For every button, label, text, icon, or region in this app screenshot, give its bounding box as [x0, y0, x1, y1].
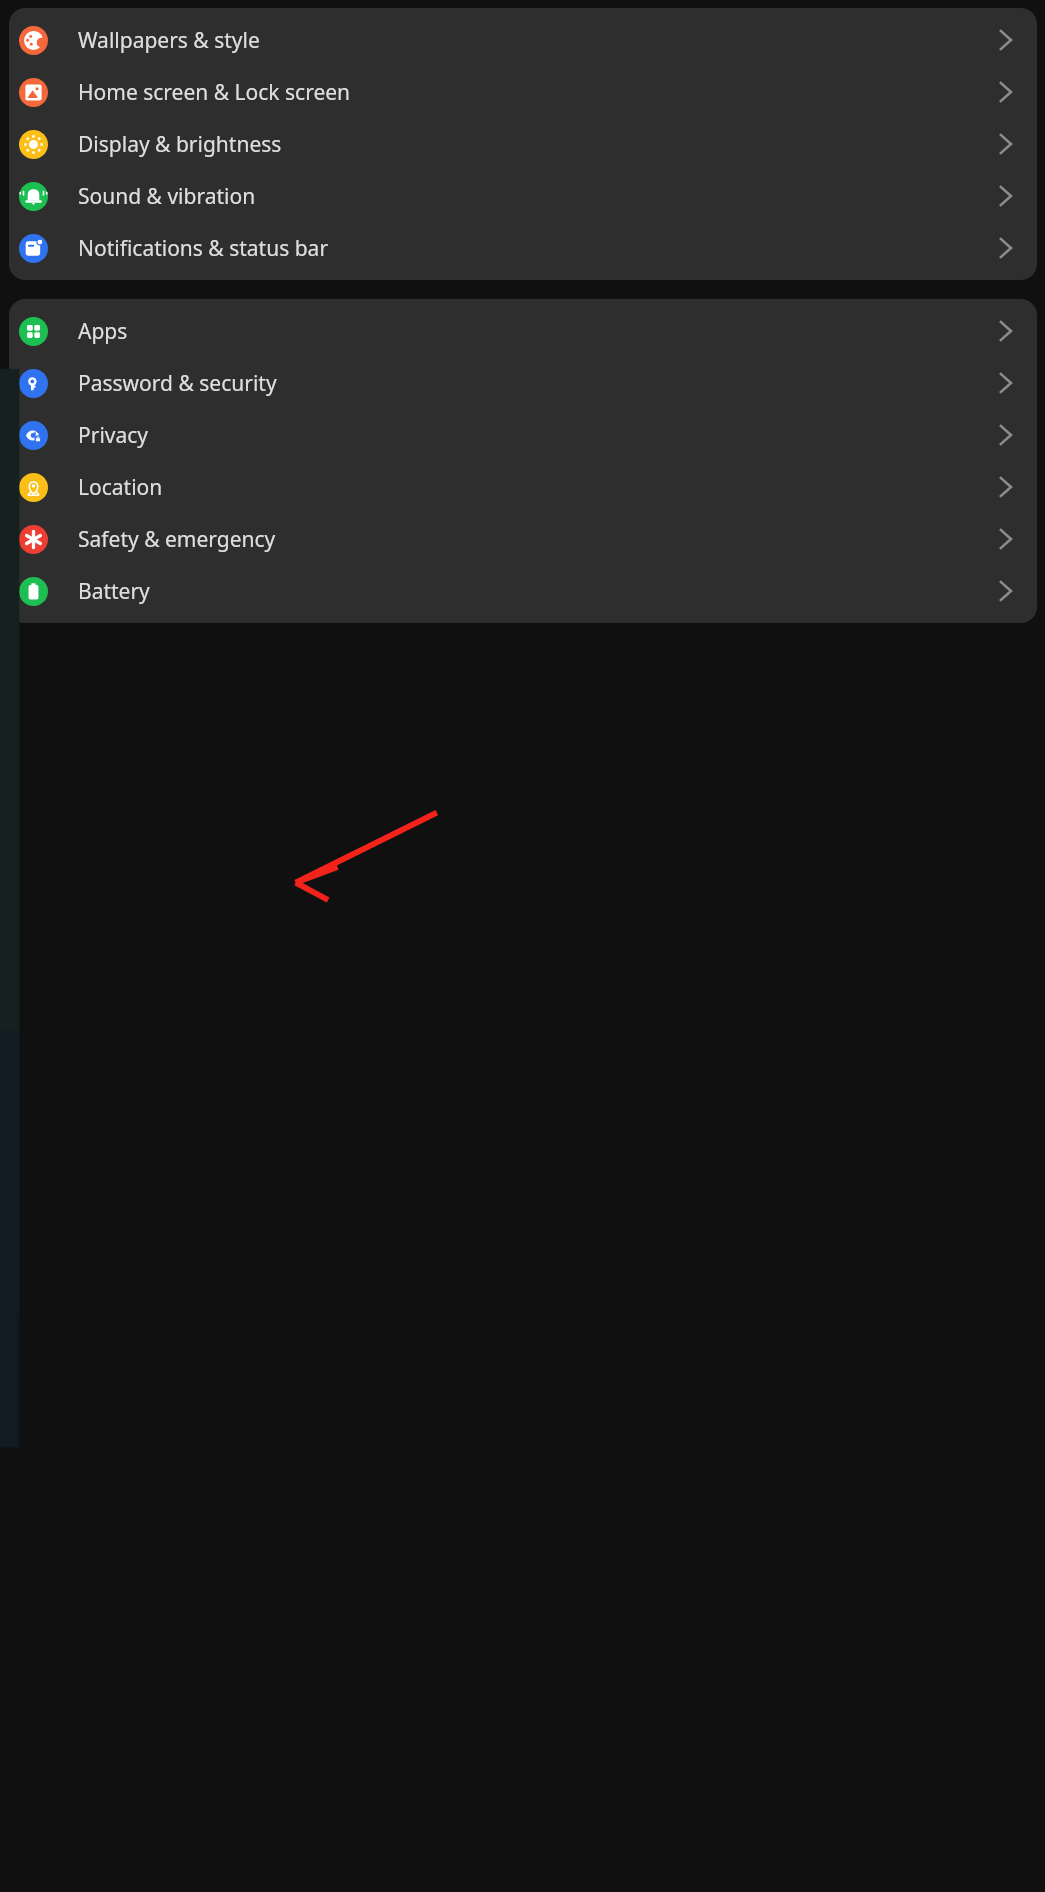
button[interactable]: Safety & emergency [9, 513, 1037, 565]
button[interactable]: Display & brightness [9, 118, 1037, 170]
staticText: Password & security [78, 369, 990, 398]
staticText: Battery [78, 577, 990, 606]
staticText: Privacy [78, 421, 990, 450]
button[interactable]: Sound & vibration [9, 170, 1037, 222]
staticText: Sound & vibration [78, 182, 990, 211]
staticText: Display & brightness [78, 130, 990, 159]
button[interactable]: Privacy [9, 409, 1037, 461]
staticText: Apps [78, 317, 990, 346]
staticText: Wallpapers & style [78, 26, 990, 55]
button[interactable]: Wallpapers & style [9, 14, 1037, 66]
staticText: Notifications & status bar [78, 234, 990, 263]
button[interactable]: Battery [9, 565, 1037, 617]
staticText: Safety & emergency [78, 525, 990, 554]
button[interactable]: Notifications & status bar [9, 222, 1037, 274]
staticText: Home screen & Lock screen [78, 78, 990, 107]
button[interactable]: Home screen & Lock screen [9, 66, 1037, 118]
button[interactable]: Apps [9, 305, 1037, 357]
staticText: Location [78, 473, 990, 502]
button[interactable]: Password & security [9, 357, 1037, 409]
button[interactable]: Location [9, 461, 1037, 513]
